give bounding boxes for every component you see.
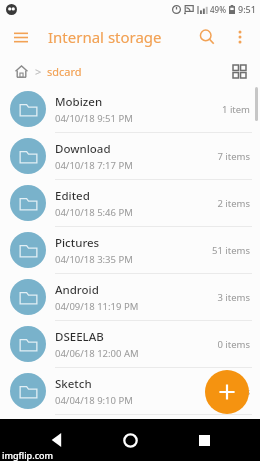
staticText: 9:51 [238, 3, 256, 15]
staticText: Edited [55, 188, 90, 204]
button[interactable]: Recent apps [187, 423, 221, 457]
staticText: Sketch [55, 376, 92, 392]
staticText: Pictures [55, 235, 100, 251]
staticText: DSEELAB [55, 329, 104, 345]
button[interactable]: Switch to grid view [226, 58, 252, 84]
button[interactable]: DSEELAB [0, 321, 260, 367]
staticText: 49% [210, 4, 226, 15]
button[interactable]: Open navigation menu [6, 22, 36, 52]
button[interactable]: Back [40, 423, 74, 457]
button[interactable]: Edited [0, 180, 260, 226]
button[interactable]: Android [0, 274, 260, 320]
staticText: Mobizen [55, 94, 103, 110]
staticText: 04/10/18 3:35 PM [55, 253, 133, 266]
staticText: 2 items [217, 197, 250, 210]
button[interactable]: Home [113, 423, 147, 457]
staticText: 3 items [217, 291, 250, 304]
button[interactable]: Search [192, 22, 222, 52]
staticText: imgflip.com [2, 449, 54, 461]
button[interactable]: Mobizen [0, 86, 260, 132]
button[interactable]: Download [0, 133, 260, 179]
staticText: 04/10/18 7:17 PM [55, 159, 133, 172]
staticText: 0 items [217, 338, 250, 351]
staticText: 04/10/18 9:51 PM [55, 112, 133, 125]
staticText: 51 items [211, 244, 250, 257]
staticText: 04/04/18 9:10 PM [55, 394, 133, 407]
staticText: 04/09/18 11:19 PM [55, 300, 139, 313]
button[interactable]: Pictures [0, 227, 260, 273]
staticText: Android [55, 282, 99, 298]
button[interactable]: Add new item [205, 370, 249, 414]
staticText: 1 item [221, 103, 250, 116]
staticText: 04/10/18 5:46 PM [55, 206, 133, 219]
staticText: > [35, 64, 42, 79]
button[interactable]: More options [226, 23, 254, 51]
button[interactable]: sdcard [47, 64, 82, 79]
button[interactable]: Sketch [0, 368, 260, 414]
staticText: Internal storage [48, 27, 162, 47]
button[interactable]: Home directory [10, 60, 32, 82]
staticText: 04/06/18 12:00 AM [55, 347, 139, 360]
staticText: Download [55, 141, 111, 157]
staticText: 1 items [217, 385, 250, 398]
staticText: 7 items [217, 150, 250, 163]
